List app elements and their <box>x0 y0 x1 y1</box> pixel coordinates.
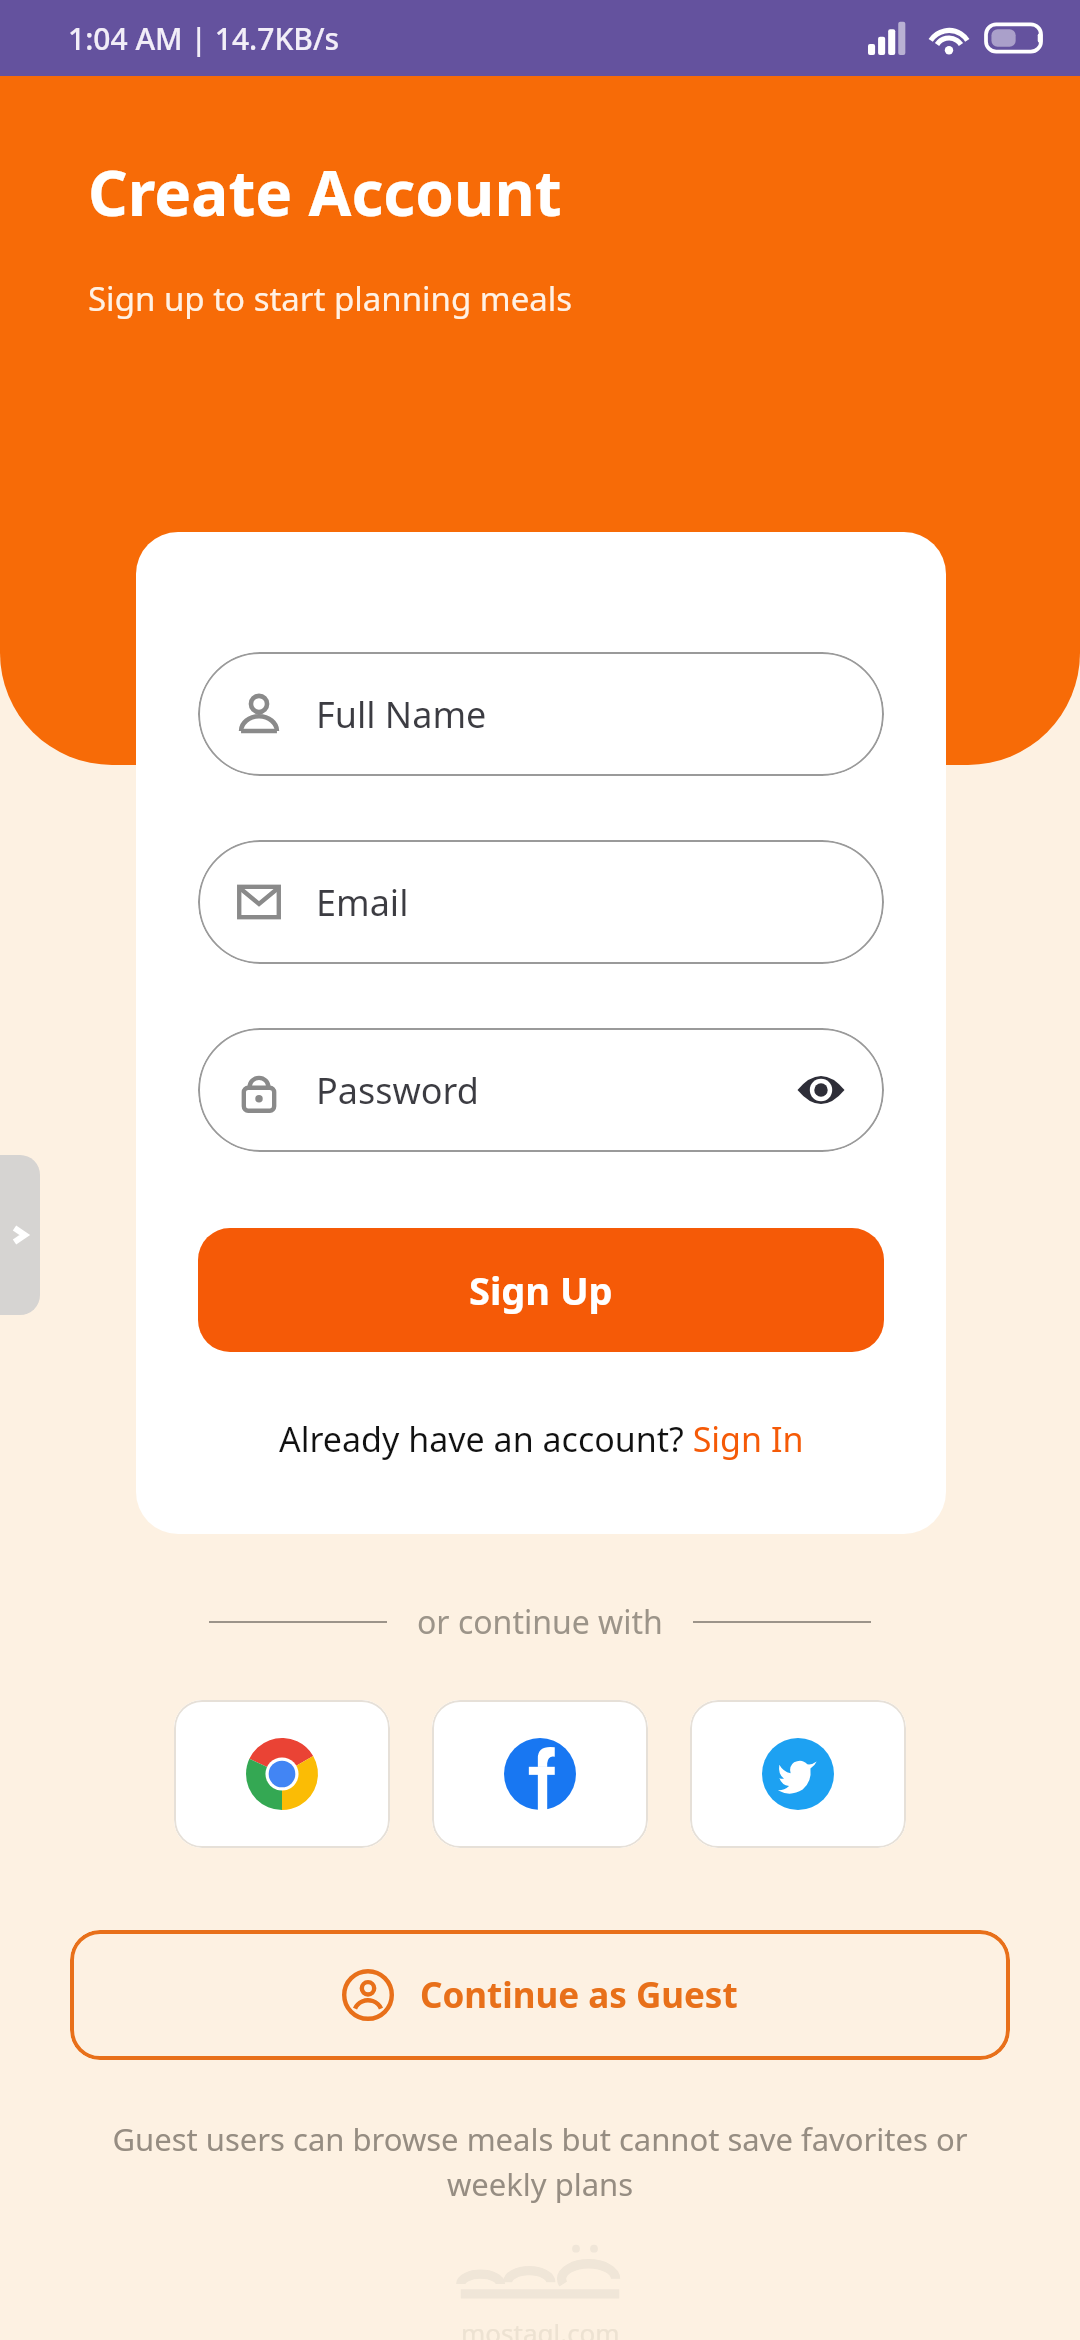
staticText: mostaql.com <box>461 2315 620 2340</box>
staticText: Email <box>316 878 846 927</box>
staticText: Guest users can browse meals but cannot … <box>80 2118 1000 2205</box>
staticText: Already have an account? Sign In <box>279 1416 804 1462</box>
button[interactable]: Sign up with Twitter <box>690 1700 906 1848</box>
staticText: Password <box>316 1066 796 1115</box>
staticText: Sign Up <box>469 1264 613 1316</box>
staticText: Create Account <box>88 150 562 234</box>
button[interactable]: Show password <box>796 1065 846 1115</box>
button[interactable]: Full Name <box>198 652 884 776</box>
staticText: Continue as Guest <box>420 1971 738 2019</box>
button[interactable]: Password <box>198 1028 884 1152</box>
staticText: 1:04 AM | 14.7KB/s <box>68 18 340 59</box>
button[interactable]: Email <box>198 840 884 964</box>
button[interactable]: Already have an account? Sign In <box>198 1416 884 1462</box>
staticText: Full Name <box>316 690 846 739</box>
staticText: or continue with <box>417 1600 663 1644</box>
staticText: Sign up to start planning meals <box>88 276 573 321</box>
button[interactable]: Sign up with Google <box>174 1700 390 1848</box>
button[interactable]: Sign up with Facebook <box>432 1700 648 1848</box>
button[interactable]: Sign Up <box>198 1228 884 1352</box>
button[interactable]: Continue as Guest <box>70 1930 1010 2060</box>
button[interactable]: Open side panel <box>0 1155 40 1315</box>
